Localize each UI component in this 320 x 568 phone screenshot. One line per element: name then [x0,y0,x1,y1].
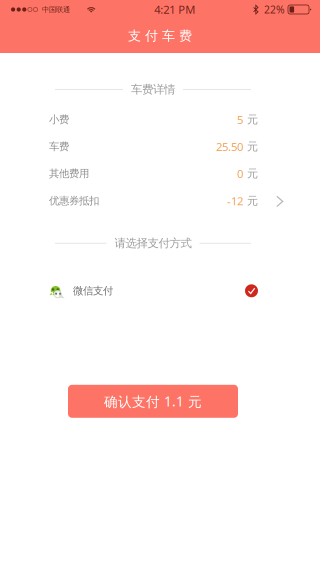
staticText: 支 付 车 费 [128,28,192,44]
staticText: 4:21 PM [154,2,195,17]
staticText: 5 [237,112,243,127]
staticText: 确认支付 1.1 元 [104,392,202,410]
staticText: 中国联通 [42,5,70,14]
button[interactable]: 确认支付 1.1 元 [68,385,238,418]
staticText: 25.50 [216,139,243,154]
staticText: 元 [247,112,258,126]
staticText: 优惠券抵扣 [49,194,99,207]
button[interactable]: 微信支付 [0,274,320,308]
staticText: 请选择支付方式 [114,236,191,250]
staticText: 车费 [49,140,69,153]
staticText: 22% [264,2,285,17]
staticText: -12 [227,193,243,209]
staticText: 元 [247,139,258,153]
staticText: 小费 [49,113,69,126]
staticText: 微信支付 [73,284,113,297]
staticText: 元 [247,194,258,208]
staticText: 元 [247,166,258,180]
staticText: 其他费用 [49,167,89,180]
staticText: 车费详情 [131,82,175,97]
staticText: 0 [237,166,243,181]
